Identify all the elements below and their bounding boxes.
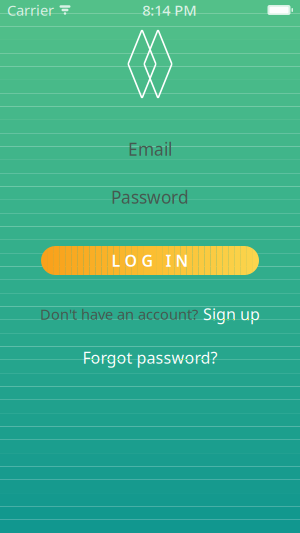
button[interactable]: L O G I N <box>41 246 259 275</box>
staticText: 8:14 PM <box>142 0 196 20</box>
button[interactable]: Email <box>41 131 259 167</box>
staticText: Password <box>111 185 189 208</box>
button[interactable]: Sign up <box>203 300 260 328</box>
staticText: Sign up <box>203 303 260 325</box>
staticText: Don't have an account? <box>40 304 198 324</box>
button[interactable]: Password <box>41 179 259 215</box>
button[interactable]: Forgot password? <box>72 343 227 372</box>
staticText: Carrier <box>7 0 54 20</box>
staticText: Email <box>128 137 172 160</box>
staticText: Forgot password? <box>82 347 217 368</box>
staticText: L O G I N <box>111 250 188 271</box>
